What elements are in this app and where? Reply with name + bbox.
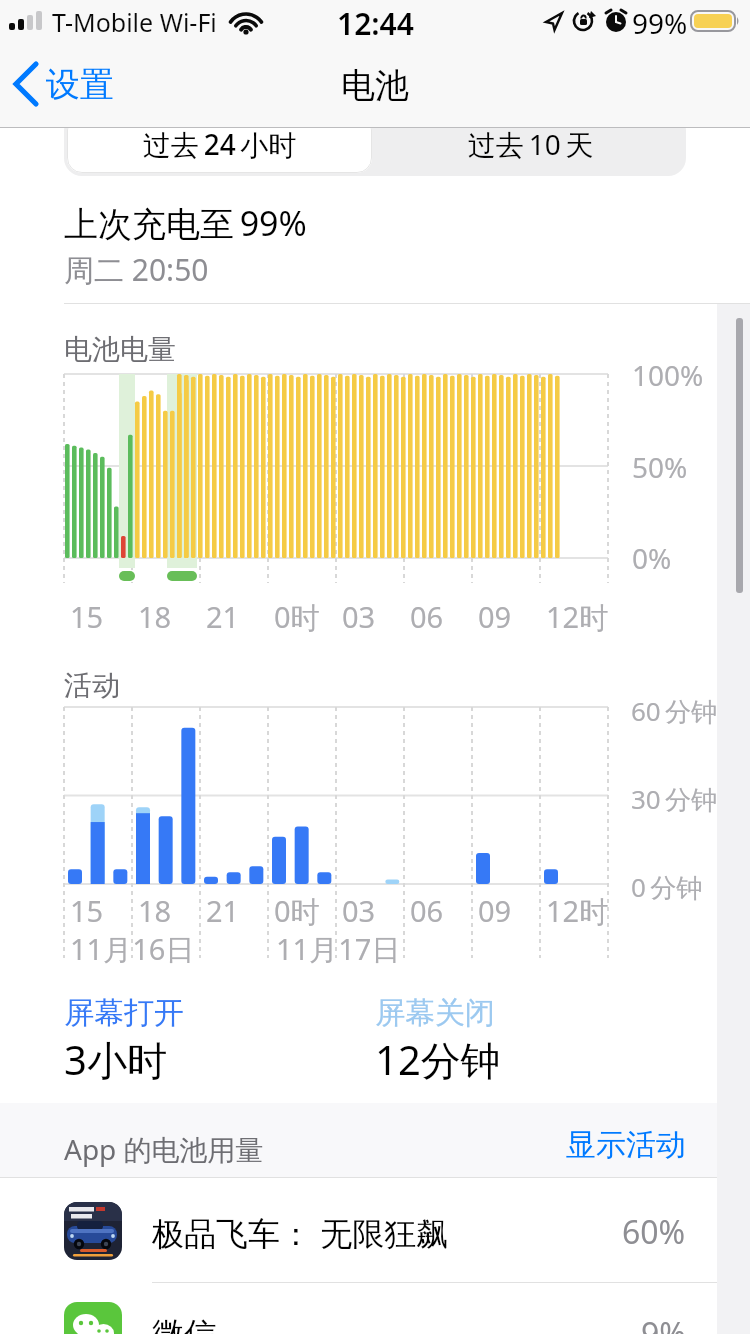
button[interactable]: 显示活动 — [400, 1126, 686, 1166]
staticText: 18 — [138, 891, 172, 930]
staticText: 周二 20:50 — [64, 249, 209, 290]
staticText: 09 — [478, 597, 512, 636]
staticText: 50% — [632, 448, 688, 486]
staticText: 9% — [641, 1312, 686, 1334]
staticText: 12:44 — [337, 3, 414, 44]
staticText: 12分钟 — [375, 1032, 501, 1087]
staticText: T-Mobile Wi-Fi — [52, 5, 217, 39]
staticText: 显示活动 — [566, 1126, 686, 1164]
staticText: 11月17日 — [276, 929, 401, 969]
staticText: 11月16日 — [70, 929, 195, 969]
staticText: 电池电量 — [64, 332, 176, 367]
staticText: 0时 — [274, 597, 320, 637]
staticText: 100% — [632, 356, 704, 394]
staticText: 过去 10 天 — [468, 125, 594, 163]
staticText: 3小时 — [64, 1032, 167, 1087]
staticText: 极品飞车： 无限狂飙 — [152, 1211, 449, 1255]
staticText: 上次充电至 99% — [64, 200, 307, 246]
staticText: 0 分钟 — [631, 869, 703, 905]
staticText: 屏幕关闭 — [375, 994, 495, 1032]
staticText: 12时 — [546, 597, 609, 637]
staticText: 微信 — [152, 1314, 216, 1334]
button[interactable]: 极品飞车： 无限狂飙 — [0, 1178, 750, 1282]
staticText: 21 — [206, 597, 240, 636]
staticText: 18 — [138, 597, 172, 636]
staticText: 03 — [342, 597, 376, 636]
staticText: 12时 — [546, 891, 609, 931]
staticText: 09 — [478, 891, 512, 930]
staticText: 06 — [410, 891, 444, 930]
button[interactable]: 设置 — [10, 58, 114, 110]
staticText: 03 — [342, 891, 376, 930]
staticText: 0时 — [274, 891, 320, 931]
staticText: 60% — [622, 1210, 686, 1254]
staticText: 电池 — [341, 64, 409, 107]
staticText: 99% — [632, 4, 688, 42]
staticText: 0% — [632, 539, 672, 577]
button[interactable]: 过去 24 小时 — [67, 115, 372, 173]
staticText: 活动 — [64, 668, 120, 703]
staticText: 15 — [70, 597, 104, 636]
staticText: 过去 24 小时 — [143, 125, 297, 163]
staticText: 30 分钟 — [631, 781, 718, 817]
staticText: 15 — [70, 891, 104, 930]
staticText: 06 — [410, 597, 444, 636]
staticText: 21 — [206, 891, 240, 930]
staticText: App 的电池用量 — [64, 1130, 264, 1168]
staticText: 设置 — [46, 63, 114, 106]
button[interactable]: 微信 — [0, 1279, 750, 1334]
staticText: 屏幕打开 — [64, 994, 184, 1032]
staticText: 60 分钟 — [631, 693, 718, 729]
button[interactable]: 过去 10 天 — [375, 112, 686, 176]
